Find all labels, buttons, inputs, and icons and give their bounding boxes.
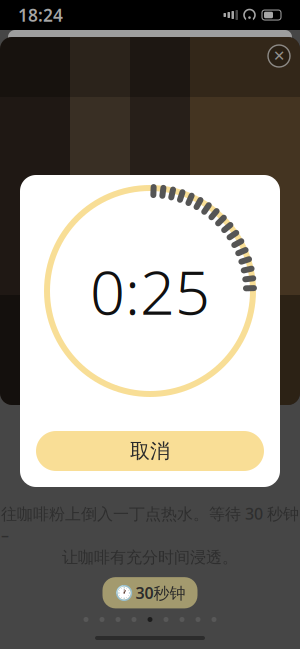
staticText: 18:24 <box>18 3 63 26</box>
button[interactable]: Close <box>264 41 294 71</box>
staticText: 0:25 <box>90 250 210 332</box>
staticText: 让咖啡有充分时间浸透。 <box>62 547 238 567</box>
staticText: 30秒钟 <box>135 582 185 603</box>
button[interactable]: 🕐 <box>102 577 197 608</box>
staticText: ✕ <box>273 48 285 64</box>
button[interactable]: 取消 <box>36 431 264 471</box>
staticText: 取消 <box>130 439 170 463</box>
staticText: 🕐 <box>114 584 132 601</box>
staticText: 往咖啡粉上倒入一丁点热水。等待 30 秒钟 – <box>1 503 299 545</box>
